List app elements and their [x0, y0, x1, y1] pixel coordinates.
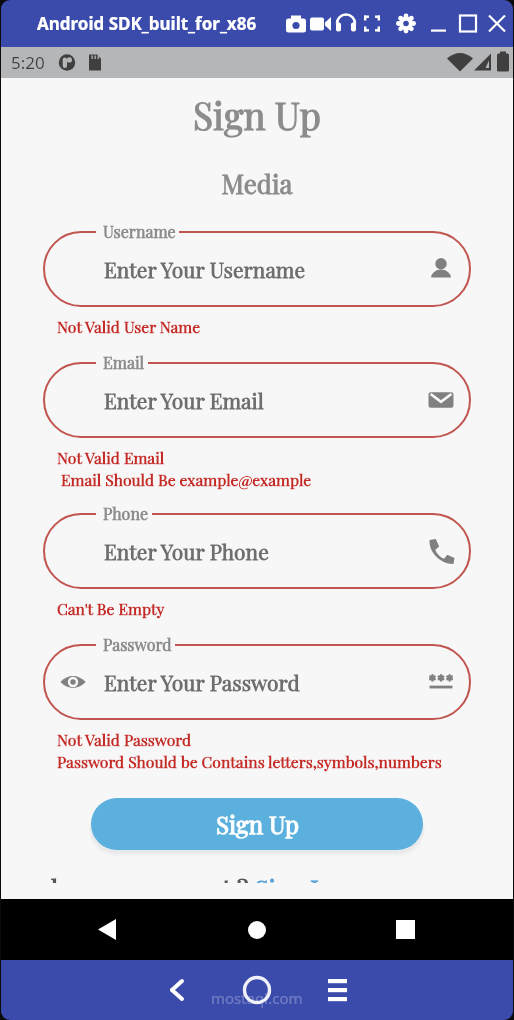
staticText: Android SDK_built_for_x86 [37, 12, 257, 35]
staticText: Not Valid Email [57, 447, 165, 469]
button[interactable]: Enter Your Phone [43, 513, 471, 589]
button[interactable]: Toggle password visibility [56, 665, 90, 699]
staticText: Sign In [255, 871, 334, 883]
staticText: Email [103, 352, 145, 373]
staticText: 5:20 [11, 51, 45, 74]
staticText: Enter Your Password [104, 668, 300, 696]
staticText: Can't Be Empty [57, 598, 165, 620]
staticText: Enter Your Email [104, 386, 264, 414]
staticText: mostaql.com [211, 988, 303, 1008]
staticText: Enter Your Phone [104, 537, 269, 565]
staticText: Password [103, 634, 172, 655]
staticText: Media [1, 166, 513, 201]
staticText: Username [103, 221, 176, 242]
button[interactable]: Menu [312, 960, 362, 1020]
staticText: Enter Your Username [104, 255, 306, 283]
button[interactable]: have an account ? [51, 871, 334, 883]
staticText: Password Should be Contains letters,symb… [57, 751, 442, 773]
staticText: Sign Up [216, 808, 299, 840]
button[interactable]: Email [423, 382, 459, 418]
staticText: Phone [103, 503, 149, 524]
button[interactable]: Back [152, 960, 202, 1020]
button[interactable]: Password [423, 664, 459, 700]
button[interactable]: Recent apps [375, 899, 435, 960]
staticText: Not Valid Password [57, 729, 192, 751]
button[interactable]: Enter Your Email [43, 362, 471, 438]
staticText: have an account ? [51, 871, 255, 883]
button[interactable]: Sign Up [91, 798, 423, 850]
button[interactable]: Home [227, 900, 287, 960]
button[interactable]: Back [78, 899, 138, 960]
button[interactable]: Username [423, 251, 459, 287]
staticText: Email Should Be example@example [57, 469, 312, 491]
button[interactable]: Enter Your Password [43, 644, 471, 720]
staticText: Sign Up [1, 90, 513, 139]
staticText: Not Valid User Name [57, 316, 201, 338]
button[interactable]: Phone [423, 533, 459, 569]
button[interactable]: Enter Your Username [43, 231, 471, 307]
